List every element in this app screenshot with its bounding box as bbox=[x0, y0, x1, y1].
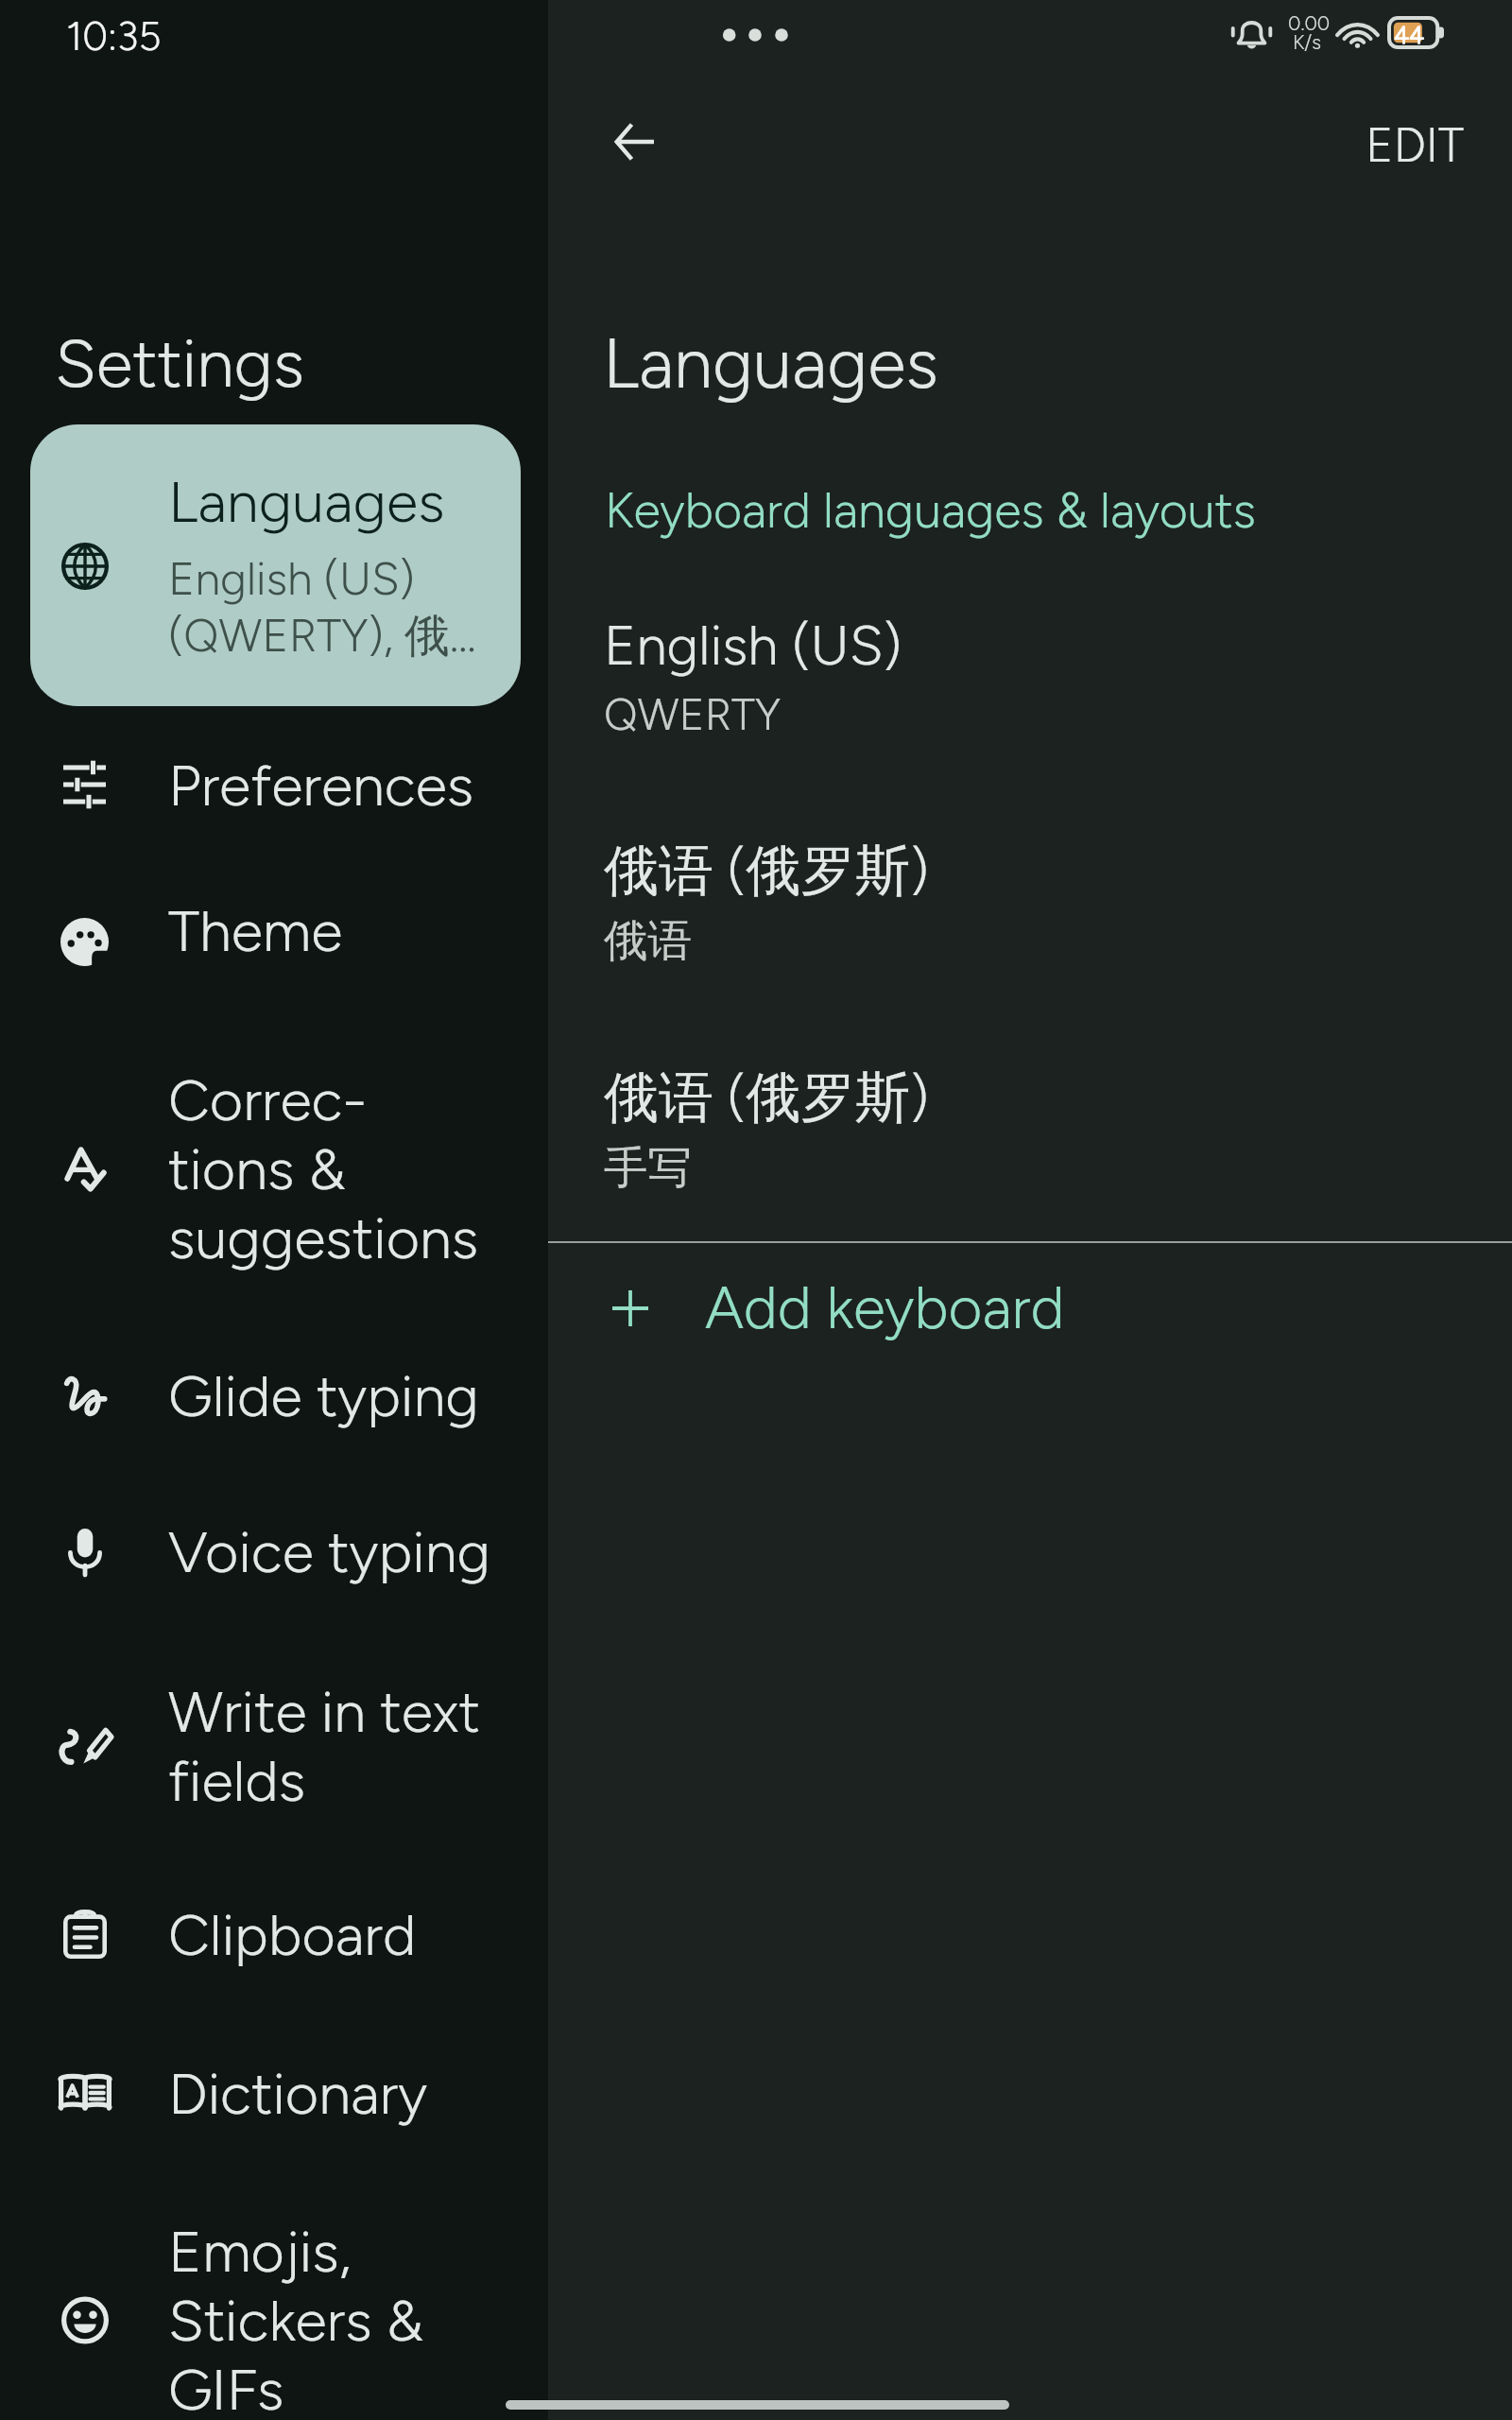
button[interactable]: Correc- tions & suggestions bbox=[0, 1038, 548, 1299]
button[interactable]: Dictionary bbox=[0, 2029, 548, 2157]
button[interactable]: Add keyboard bbox=[548, 1241, 1512, 1374]
staticText: Voice typing bbox=[168, 1517, 490, 1586]
staticText: Glide typing bbox=[168, 1361, 479, 1430]
staticText: K/s bbox=[1293, 30, 1321, 54]
staticText: Preferences bbox=[168, 751, 474, 820]
button[interactable]: 俄语 (俄罗斯) bbox=[548, 829, 1512, 952]
staticText: 俄语 bbox=[604, 913, 692, 969]
staticText: Languages bbox=[168, 467, 445, 536]
staticText: Theme bbox=[168, 896, 343, 965]
button[interactable]: Theme bbox=[0, 866, 548, 994]
staticText: Emojis, Stickers & GIFs bbox=[168, 2217, 424, 2420]
staticText: 俄语 (俄罗斯) bbox=[604, 1063, 929, 1132]
staticText: 10:35 bbox=[66, 12, 162, 60]
staticText: 俄语 (俄罗斯) bbox=[604, 837, 929, 906]
button[interactable]: English (US) bbox=[548, 605, 1512, 728]
button[interactable]: 俄语 (俄罗斯) bbox=[548, 1056, 1512, 1179]
button[interactable]: EDIT bbox=[1347, 103, 1483, 186]
button[interactable]: Emojis, Stickers & GIFs bbox=[0, 2189, 548, 2420]
staticText: 手写 bbox=[604, 1140, 692, 1196]
staticText: EDIT bbox=[1366, 116, 1464, 173]
staticText: English (US) bbox=[604, 613, 902, 679]
staticText: Write in text fields bbox=[168, 1677, 480, 1815]
button[interactable]: Clipboard bbox=[0, 1870, 548, 1998]
staticText: Dictionary bbox=[168, 2059, 428, 2128]
staticText: QWERTY bbox=[604, 688, 781, 740]
staticText: 44 bbox=[1394, 20, 1425, 49]
staticText: 0.00 bbox=[1288, 11, 1331, 35]
staticText: Languages bbox=[603, 321, 938, 406]
button[interactable]: Voice typing bbox=[0, 1487, 548, 1616]
button[interactable]: Back bbox=[589, 96, 679, 187]
button[interactable]: Glide typing bbox=[0, 1331, 548, 1460]
staticText: Keyboard languages & layouts bbox=[605, 481, 1256, 540]
button[interactable]: Languages bbox=[30, 424, 521, 706]
staticText: Add keyboard bbox=[705, 1272, 1065, 1342]
staticText: Correc- tions & suggestions bbox=[168, 1065, 479, 1272]
button[interactable]: Write in text fields bbox=[0, 1649, 548, 1843]
staticText: English (US) (QWERTY), 俄… bbox=[168, 551, 476, 665]
staticText: Clipboard bbox=[168, 1900, 417, 1969]
staticText: Settings bbox=[55, 323, 304, 404]
button[interactable]: Preferences bbox=[0, 720, 548, 849]
